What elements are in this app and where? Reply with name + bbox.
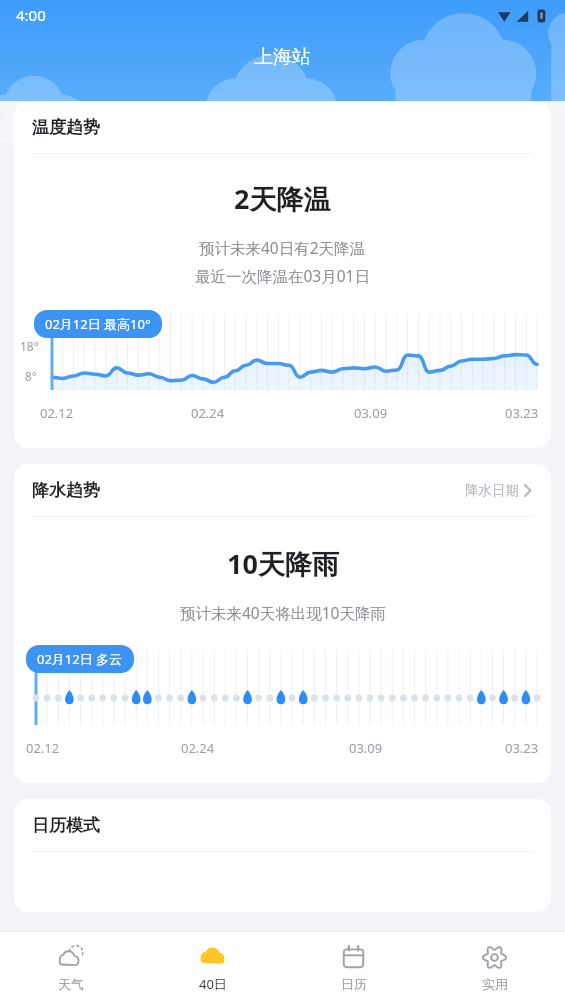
staticText: 40日: [199, 975, 227, 993]
staticText: 温度趋势: [32, 117, 100, 138]
staticText: 预计未来40日有2天降温: [199, 237, 366, 258]
staticText: 预计未来40天将出现10天降雨: [180, 602, 386, 623]
staticText: 02.12: [40, 404, 74, 422]
staticText: 03.09: [354, 404, 388, 422]
button[interactable]: 实用: [424, 932, 565, 1004]
staticText: 最近一次降温在03月01日: [195, 265, 370, 286]
staticText: 02月12日 多云: [37, 650, 123, 668]
staticText: 03.09: [349, 739, 383, 757]
button[interactable]: 40日: [142, 932, 283, 1004]
button[interactable]: 02月12日 最高10°: [34, 310, 162, 338]
staticText: 18°: [20, 338, 39, 354]
staticText: 02.24: [181, 739, 215, 757]
staticText: 8°: [25, 368, 38, 384]
staticText: 02.12: [26, 739, 60, 757]
staticText: 天气: [58, 976, 84, 992]
staticText: 4:00: [16, 5, 46, 25]
staticText: 上海站: [254, 45, 311, 69]
staticText: 03.23: [505, 739, 539, 757]
button[interactable]: 降水日期: [463, 476, 533, 505]
staticText: 02.24: [191, 404, 225, 422]
button[interactable]: 日历: [283, 932, 424, 1004]
staticText: 03.23: [505, 404, 539, 422]
staticText: 日历: [341, 976, 367, 992]
staticText: 降水日期: [465, 482, 519, 499]
staticText: 降水趋势: [32, 480, 100, 501]
staticText: 实用: [482, 976, 508, 992]
staticText: 日历模式: [32, 815, 100, 836]
staticText: 10天降雨: [227, 545, 339, 582]
button[interactable]: 天气: [0, 932, 142, 1004]
button[interactable]: 02月12日 多云: [26, 645, 134, 673]
staticText: 02月12日 最高10°: [45, 315, 151, 333]
staticText: 2天降温: [234, 180, 331, 217]
